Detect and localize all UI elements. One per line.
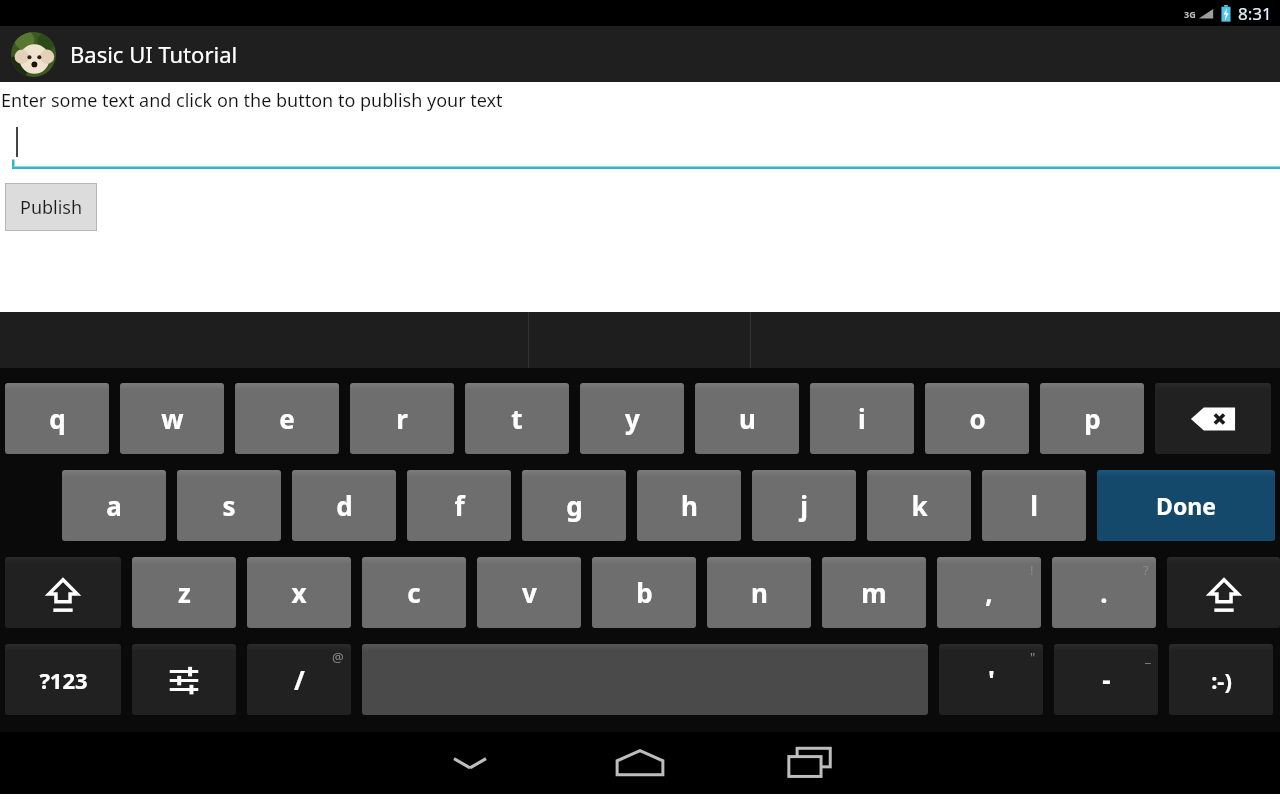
button[interactable]: d	[292, 470, 396, 541]
button[interactable]: b	[592, 557, 696, 628]
staticText: w	[161, 401, 184, 436]
button[interactable]: Shift	[1167, 557, 1280, 628]
button[interactable]: Recent apps	[740, 732, 880, 794]
button[interactable]: '	[939, 644, 1043, 715]
button[interactable]: h	[637, 470, 741, 541]
button[interactable]: ,	[937, 557, 1041, 628]
button[interactable]: o	[925, 383, 1029, 454]
staticText: Publish	[20, 195, 83, 220]
staticText: Basic UI Tutorial	[70, 39, 238, 69]
button[interactable]: w	[120, 383, 224, 454]
button[interactable]: c	[362, 557, 466, 628]
staticText: 3G	[1184, 8, 1196, 20]
button[interactable]: g	[522, 470, 626, 541]
button[interactable]: k	[867, 470, 971, 541]
staticText: a	[106, 488, 122, 523]
button[interactable]: j	[752, 470, 856, 541]
button[interactable]: Publish	[5, 183, 97, 231]
staticText: z	[178, 575, 191, 610]
staticText: .	[1100, 575, 1108, 610]
staticText: Done	[1156, 490, 1216, 521]
button[interactable]: f	[407, 470, 511, 541]
staticText: @	[332, 648, 344, 666]
button[interactable]: q	[5, 383, 109, 454]
staticText: '	[988, 662, 995, 697]
staticText: m	[861, 575, 887, 610]
staticText: 8:31	[1238, 2, 1272, 25]
button[interactable]: Text input field	[0, 121, 1280, 169]
staticText: f	[454, 488, 465, 523]
staticText: n	[751, 575, 768, 610]
button[interactable]: ?123	[5, 644, 121, 715]
button[interactable]: m	[822, 557, 926, 628]
button[interactable]: p	[1040, 383, 1144, 454]
staticText: "	[1030, 648, 1036, 666]
staticText: Enter some text and click on the button …	[1, 88, 503, 113]
staticText: ?	[1143, 561, 1149, 579]
staticText: /	[294, 662, 305, 697]
button[interactable]: .	[1052, 557, 1156, 628]
staticText: l	[1030, 488, 1038, 523]
staticText: q	[49, 401, 66, 436]
button[interactable]: a	[62, 470, 166, 541]
staticText: t	[511, 401, 523, 436]
staticText: -	[1102, 662, 1111, 697]
button[interactable]: t	[465, 383, 569, 454]
button[interactable]: /	[247, 644, 351, 715]
staticText: s	[222, 488, 236, 523]
staticText: j	[800, 488, 808, 523]
staticText: _	[1145, 648, 1151, 666]
staticText: d	[336, 488, 353, 523]
staticText: p	[1084, 401, 1101, 436]
staticText: o	[969, 401, 986, 436]
button[interactable]: :-)	[1169, 644, 1273, 715]
staticText: h	[681, 488, 698, 523]
button[interactable]: Hide keyboard	[400, 732, 540, 794]
staticText: b	[636, 575, 653, 610]
button[interactable]: Shift	[5, 557, 121, 628]
staticText: k	[911, 488, 928, 523]
button[interactable]: Home	[570, 732, 710, 794]
staticText: i	[858, 401, 866, 436]
button[interactable]: l	[982, 470, 1086, 541]
button[interactable]: -	[1054, 644, 1158, 715]
button[interactable]: z	[132, 557, 236, 628]
staticText: !	[1030, 561, 1034, 579]
button[interactable]: v	[477, 557, 581, 628]
staticText: x	[291, 575, 307, 610]
button[interactable]: s	[177, 470, 281, 541]
button[interactable]: e	[235, 383, 339, 454]
button[interactable]: Done	[1097, 470, 1275, 541]
button[interactable]: x	[247, 557, 351, 628]
staticText: g	[566, 488, 583, 523]
staticText: y	[625, 401, 640, 436]
button[interactable]: Backspace	[1155, 383, 1271, 454]
button[interactable]: u	[695, 383, 799, 454]
staticText: u	[739, 401, 756, 436]
staticText: ,	[985, 575, 993, 610]
staticText: e	[279, 401, 295, 436]
staticText: r	[396, 401, 408, 436]
staticText: :-)	[1211, 665, 1232, 695]
staticText: c	[407, 575, 421, 610]
staticText: ?123	[39, 665, 88, 695]
button[interactable]: n	[707, 557, 811, 628]
button[interactable]: Input settings	[132, 644, 236, 715]
button[interactable]: i	[810, 383, 914, 454]
button[interactable]: r	[350, 383, 454, 454]
staticText: v	[522, 575, 537, 610]
button[interactable]: y	[580, 383, 684, 454]
